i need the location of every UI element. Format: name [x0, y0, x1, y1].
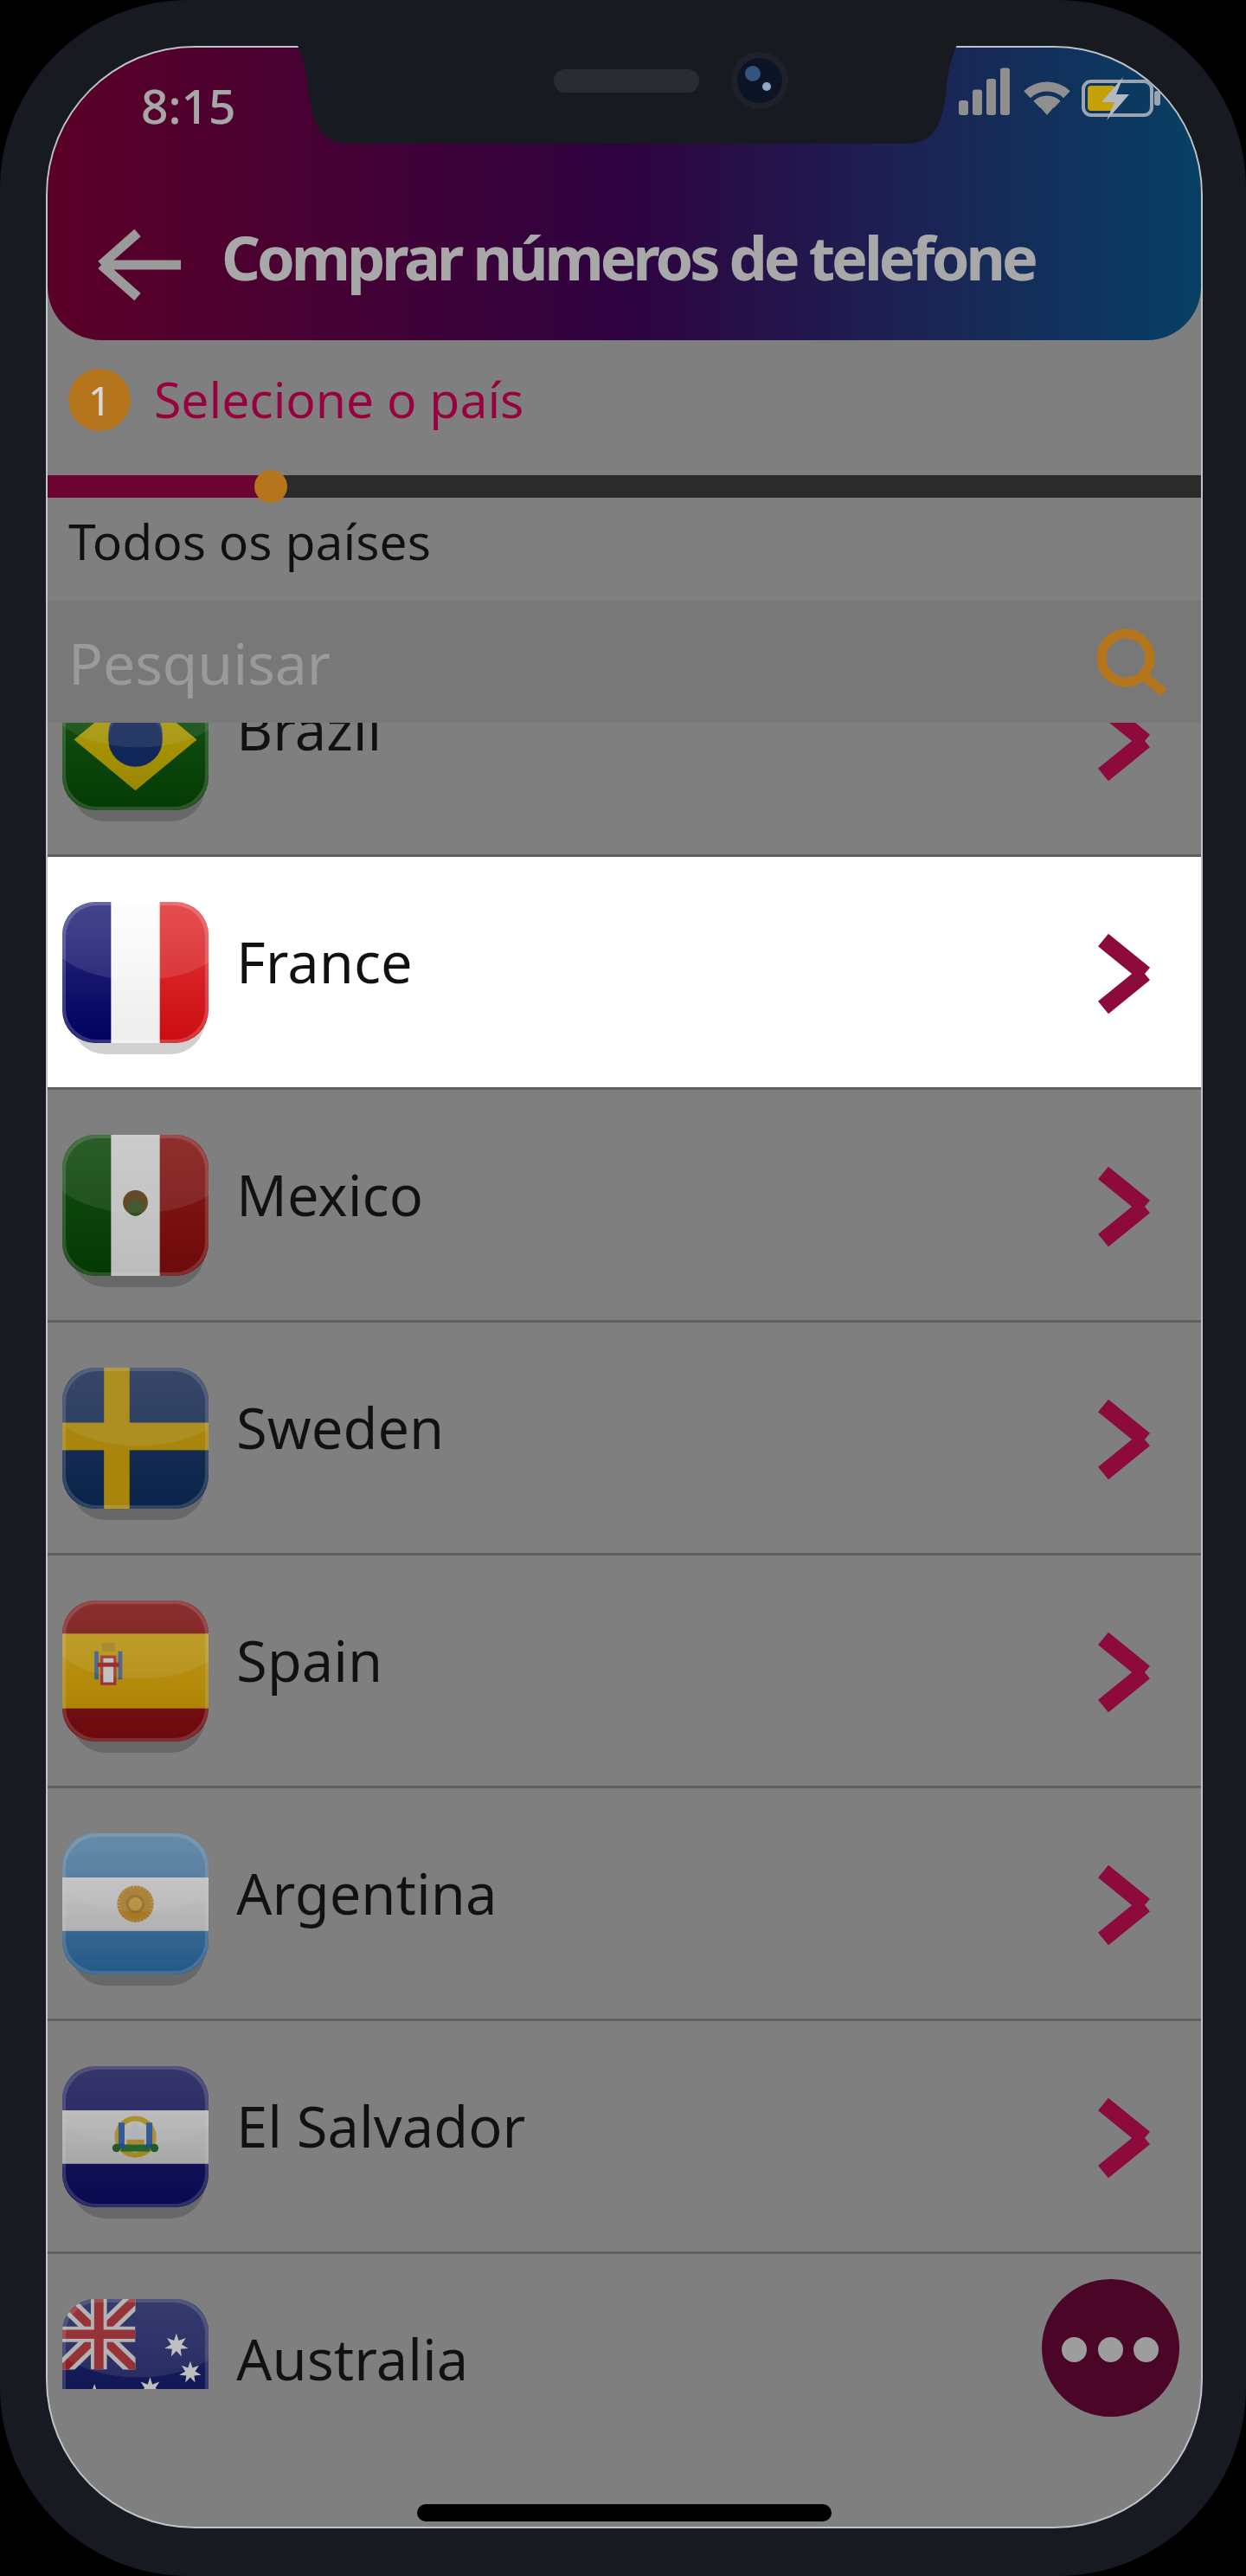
staticText: Pesquisar — [68, 623, 331, 701]
other: Search — [1096, 629, 1183, 716]
staticText: Todos os países — [68, 507, 431, 575]
button[interactable] — [48, 601, 1201, 723]
staticText: Argentina — [236, 1855, 498, 1932]
button[interactable]: Argentina — [48, 1788, 1201, 2021]
button[interactable]: More options — [1042, 2279, 1179, 2417]
staticText: 8:15 — [141, 73, 236, 138]
staticText: Sweden — [236, 1389, 445, 1466]
staticText: Spain — [236, 1622, 383, 1699]
staticText: Comprar números de telefone — [222, 216, 1035, 298]
button[interactable]: Mexico — [48, 1090, 1201, 1323]
staticText: France — [236, 924, 413, 1001]
button[interactable]: Australia — [48, 2254, 1201, 2389]
staticText: Mexico — [236, 1156, 423, 1233]
button[interactable]: Back — [71, 200, 196, 325]
staticText: Australia — [236, 2321, 469, 2389]
button[interactable]: Brazil — [48, 723, 1201, 857]
button[interactable]: Sweden — [48, 1323, 1201, 1555]
staticText: Selecione o país — [154, 365, 524, 433]
staticText: 1 — [88, 373, 112, 428]
staticText: El Salvador — [236, 2088, 526, 2165]
button[interactable]: El Salvador — [48, 2021, 1201, 2254]
button[interactable]: France — [48, 857, 1201, 1090]
button[interactable]: Spain — [48, 1555, 1201, 1788]
staticText: Brazil — [236, 723, 382, 768]
